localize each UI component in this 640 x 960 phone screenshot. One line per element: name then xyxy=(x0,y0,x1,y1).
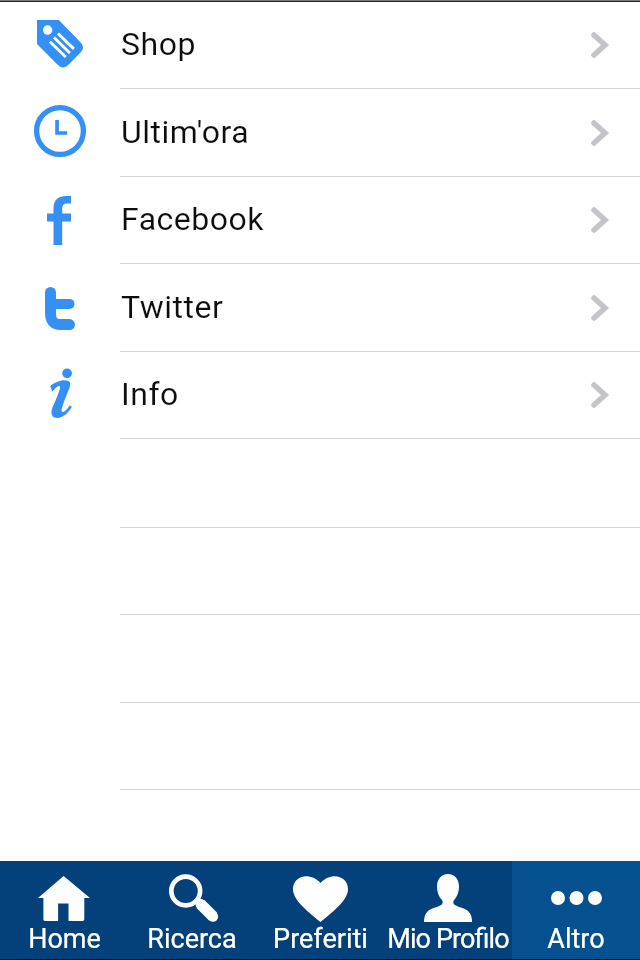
staticText: Altro xyxy=(547,923,605,955)
button[interactable]: Mio Profilo xyxy=(384,861,512,960)
button[interactable]: Shop xyxy=(0,1,640,89)
staticText: Shop xyxy=(121,25,196,63)
staticText: Facebook xyxy=(121,200,264,238)
staticText: Twitter xyxy=(121,288,224,326)
button[interactable]: Facebook xyxy=(0,176,640,264)
button[interactable]: Preferiti xyxy=(256,861,384,960)
button[interactable]: Ricerca xyxy=(128,861,256,960)
button[interactable]: Ultim'ora xyxy=(0,89,640,177)
staticText: Info xyxy=(121,375,179,413)
staticText: Home xyxy=(28,923,101,955)
staticText: Ricerca xyxy=(147,923,237,955)
button[interactable]: Twitter xyxy=(0,264,640,352)
staticText: Ultim'ora xyxy=(121,113,250,151)
button[interactable]: Altro xyxy=(512,861,640,960)
staticText: Preferiti xyxy=(273,923,368,955)
button[interactable]: Info xyxy=(0,351,640,439)
button[interactable]: Home xyxy=(0,861,128,960)
staticText: Mio Profilo xyxy=(387,923,509,955)
